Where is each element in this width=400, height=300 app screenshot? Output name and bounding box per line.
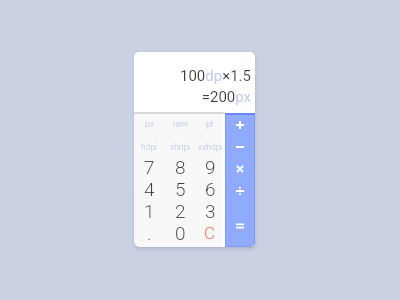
button[interactable]: 2 <box>165 203 195 225</box>
button[interactable]: pt <box>195 113 225 136</box>
button[interactable]: 6 <box>195 181 225 203</box>
staticText: 7 <box>144 156 155 178</box>
button[interactable]: rem <box>165 113 195 136</box>
staticText: 6 <box>205 178 216 200</box>
staticText: xhdpi <box>170 142 191 152</box>
staticText: . <box>147 222 152 244</box>
button[interactable]: Equals <box>225 202 255 247</box>
button[interactable]: Minus <box>225 136 255 158</box>
button[interactable]: hdpi <box>134 136 165 159</box>
staticText: 1 <box>144 200 155 222</box>
button[interactable]: xxhdpi <box>195 136 225 159</box>
button[interactable]: 3 <box>195 203 225 225</box>
staticText: 0 <box>175 222 186 244</box>
staticText: 5 <box>175 178 186 200</box>
button[interactable]: xhdpi <box>165 136 195 159</box>
staticText: 8 <box>175 156 186 178</box>
button[interactable]: 5 <box>165 181 195 203</box>
button[interactable]: 0 <box>165 225 195 247</box>
button[interactable]: Divide <box>225 180 255 202</box>
button[interactable]: 7 <box>134 159 165 181</box>
button[interactable]: C <box>195 225 225 247</box>
button[interactable]: 8 <box>165 159 195 181</box>
staticText: 3 <box>205 200 216 222</box>
staticText: pt <box>206 119 214 129</box>
staticText: 9 <box>205 156 216 178</box>
staticText: 100dp×1.5 =200px <box>180 67 251 105</box>
staticText: xxhdpi <box>198 142 223 152</box>
staticText: C <box>204 223 216 243</box>
staticText: hdpi <box>141 142 158 152</box>
staticText: px <box>145 119 154 129</box>
button[interactable]: 4 <box>134 181 165 203</box>
button[interactable]: Plus <box>225 113 255 136</box>
button[interactable]: px <box>134 113 165 136</box>
button[interactable]: . <box>134 225 165 247</box>
staticText: 4 <box>144 178 155 200</box>
button[interactable]: Multiply <box>225 158 255 180</box>
button[interactable]: 1 <box>134 203 165 225</box>
button[interactable]: 9 <box>195 159 225 181</box>
staticText: rem <box>173 119 188 129</box>
staticText: 2 <box>175 200 186 222</box>
